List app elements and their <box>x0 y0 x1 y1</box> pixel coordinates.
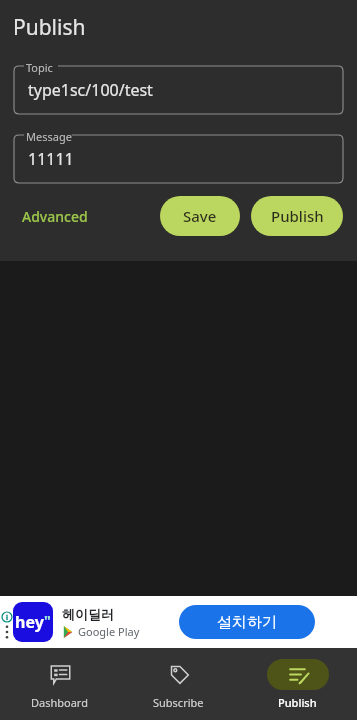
staticText: hey <box>15 611 44 633</box>
button[interactable]: 설치하기 <box>179 605 315 639</box>
button[interactable]: Advanced <box>14 201 96 232</box>
staticText: 헤이딜러 <box>62 606 114 622</box>
staticText: Save <box>183 206 217 226</box>
staticText: Subscribe <box>153 695 204 710</box>
button[interactable]: Subscribe <box>119 648 238 720</box>
staticText: 11111 <box>28 148 74 170</box>
staticText: Message <box>26 129 72 144</box>
staticText: Publish <box>13 13 86 42</box>
staticText: Publish <box>278 695 317 710</box>
staticText: Publish <box>271 206 324 226</box>
staticText: Advanced <box>22 207 88 226</box>
button[interactable]: Publish <box>238 648 357 720</box>
button[interactable]: Publish <box>251 196 343 236</box>
staticText: " <box>44 611 51 630</box>
staticText: 설치하기 <box>217 613 277 632</box>
staticText: Dashboard <box>31 695 88 710</box>
button[interactable]: Save <box>160 196 240 236</box>
staticText: Topic <box>26 60 53 75</box>
button[interactable]: Topic <box>14 58 343 114</box>
button[interactable]: Dashboard <box>0 648 119 720</box>
staticText: Google Play <box>78 624 140 639</box>
button[interactable]: Message <box>14 127 343 183</box>
staticText: type1sc/100/test <box>28 79 153 101</box>
